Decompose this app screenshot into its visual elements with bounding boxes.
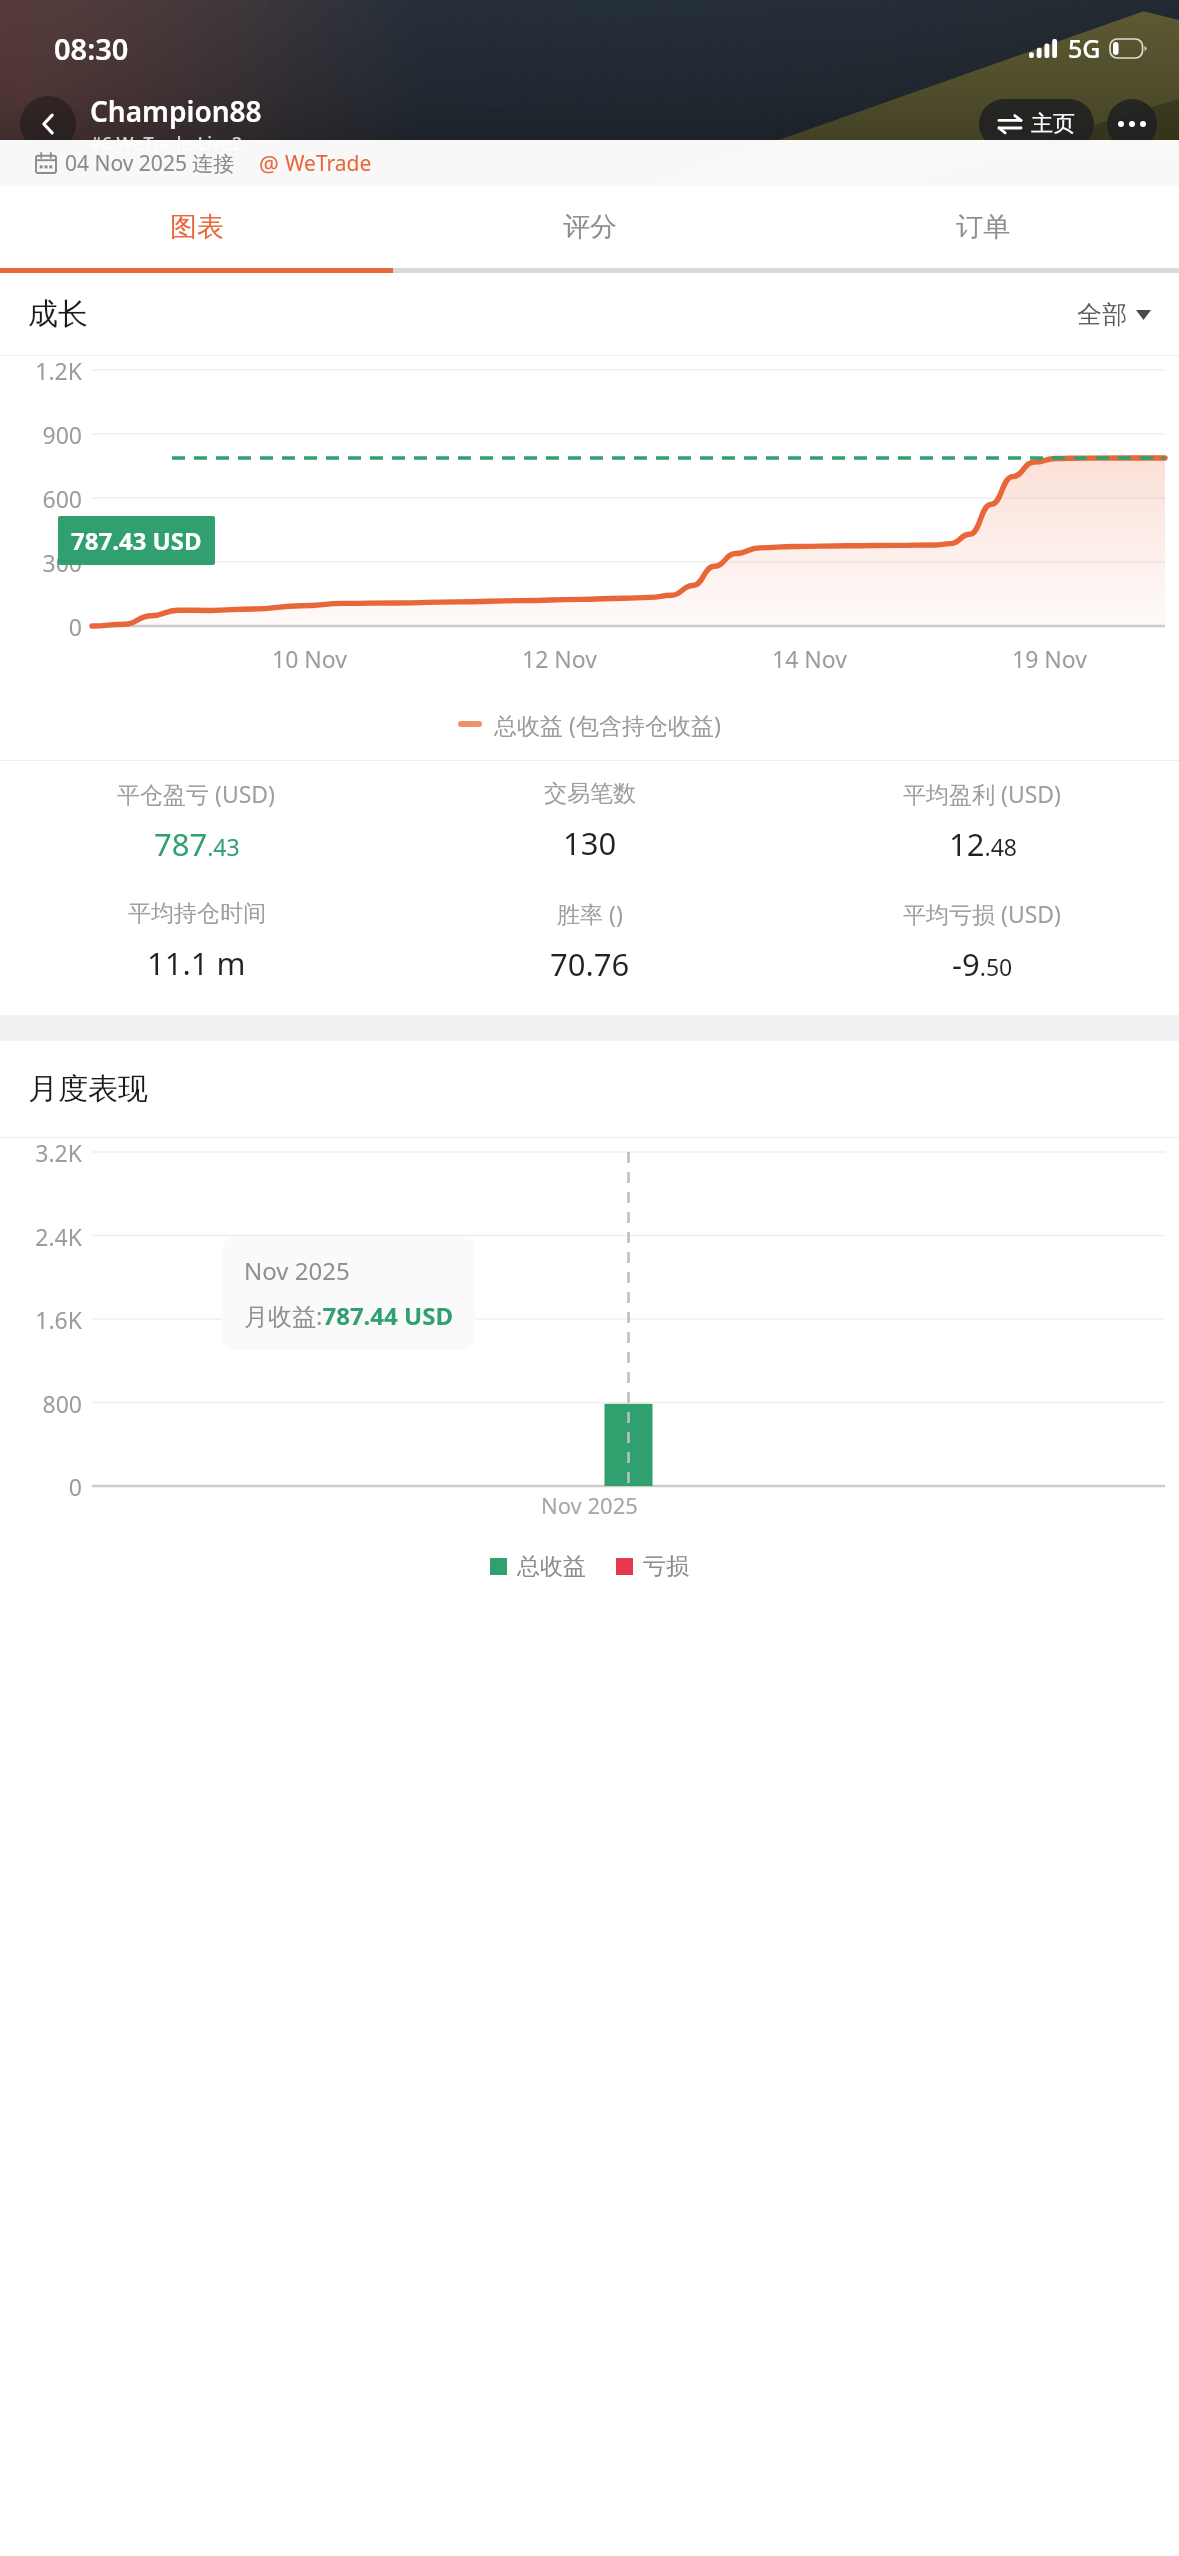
staticText: WeTrade xyxy=(285,149,372,178)
staticText: 10 Nov xyxy=(272,643,347,674)
staticText: Nov 2025 xyxy=(541,1490,638,1520)
staticText: 70.76 xyxy=(550,943,630,985)
staticText: 04 Nov 2025 连接 xyxy=(65,149,235,178)
staticText: 1.2K xyxy=(0,355,82,386)
staticText: 800 xyxy=(0,1388,82,1419)
staticText: 300 xyxy=(0,547,82,578)
staticText: 平均亏损 (USD) xyxy=(903,898,1062,929)
staticText: 全部 xyxy=(1077,299,1127,330)
staticText: 亏损 xyxy=(643,1552,689,1581)
staticText: 平仓盈亏 (USD) xyxy=(117,778,276,809)
staticText: 12.48 xyxy=(949,823,1017,865)
staticText: 600 xyxy=(0,483,82,514)
staticText: 订单 xyxy=(956,210,1010,244)
staticText: @ xyxy=(259,148,279,178)
button[interactable]: 主页 xyxy=(979,99,1094,149)
staticText: 787.43 xyxy=(154,823,240,865)
staticText: 平均盈利 (USD) xyxy=(903,778,1062,809)
button[interactable]: More options xyxy=(1107,99,1157,149)
staticText: 5G xyxy=(1068,31,1101,65)
staticText: 总收益 (包含持仓收益) xyxy=(494,709,721,740)
button[interactable]: 全部 xyxy=(1077,299,1151,330)
staticText: 11.1 m xyxy=(147,942,246,984)
staticText: 1.6K xyxy=(0,1304,82,1335)
staticText: #6 WeTrade-Live2 xyxy=(90,131,243,156)
button[interactable]: Back xyxy=(20,96,76,152)
button[interactable]: 订单 xyxy=(786,186,1179,268)
staticText: 787.43 USD xyxy=(71,524,202,557)
staticText: 2.4K xyxy=(0,1221,82,1252)
staticText: 0 xyxy=(0,1471,82,1502)
button[interactable]: @ xyxy=(259,148,372,178)
staticText: 0 xyxy=(0,611,82,642)
staticText: 3.2K xyxy=(0,1137,82,1168)
staticText: 总收益 xyxy=(517,1552,586,1581)
button[interactable]: 评分 xyxy=(393,186,786,268)
staticText: 交易笔数 xyxy=(544,779,636,808)
staticText: 12 Nov xyxy=(522,643,597,674)
staticText: 900 xyxy=(0,419,82,450)
staticText: 08:30 xyxy=(54,29,129,68)
staticText: 评分 xyxy=(563,210,617,244)
staticText: 平均持仓时间 xyxy=(128,899,266,928)
staticText: 14 Nov xyxy=(772,643,847,674)
button[interactable]: 图表 xyxy=(0,186,393,268)
staticText: 130 xyxy=(563,822,617,864)
staticText: Nov 2025 xyxy=(244,1254,350,1287)
staticText: 月度表现 xyxy=(28,1070,148,1108)
staticText: 胜率 () xyxy=(557,898,623,929)
staticText: -9.50 xyxy=(952,943,1013,985)
staticText: 月收益:787.44 USD xyxy=(244,1299,453,1332)
staticText: 主页 xyxy=(1031,110,1075,138)
staticText: 19 Nov xyxy=(1012,643,1087,674)
staticText: 图表 xyxy=(170,210,224,244)
staticText: 成长 xyxy=(28,295,88,333)
staticText: Champion88 xyxy=(90,92,262,130)
